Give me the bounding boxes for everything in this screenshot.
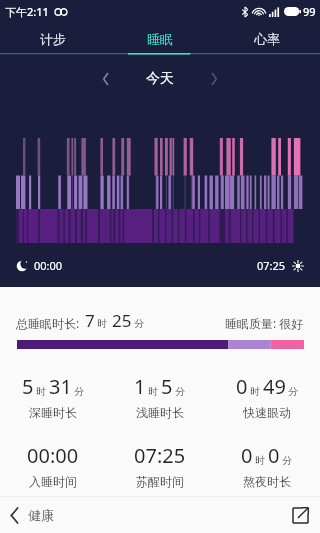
- staticText: 下午2:11: [5, 4, 49, 19]
- staticText: 苏醒时间: [136, 474, 184, 489]
- button[interactable]: Previous day: [92, 65, 120, 93]
- staticText: 5: [22, 373, 34, 400]
- staticText: 总睡眠时长:: [16, 315, 80, 331]
- staticText: 时: [97, 317, 107, 330]
- staticText: 1: [134, 373, 146, 400]
- staticText: 时: [148, 385, 158, 398]
- staticText: 今天: [146, 70, 174, 88]
- staticText: 分: [134, 317, 144, 330]
- staticText: 心率: [254, 31, 280, 47]
- button[interactable]: Share: [288, 503, 312, 527]
- staticText: 分: [74, 385, 84, 398]
- staticText: 分: [288, 385, 298, 398]
- button[interactable]: 计步: [0, 22, 106, 55]
- staticText: 分: [282, 454, 292, 467]
- staticText: 00:00: [27, 442, 79, 469]
- button[interactable]: 心率: [213, 22, 320, 55]
- staticText: 25: [112, 309, 132, 332]
- staticText: 快速眼动: [243, 405, 291, 420]
- staticText: 0: [236, 373, 248, 400]
- staticText: 计步: [40, 31, 66, 47]
- staticText: 99: [303, 4, 316, 19]
- staticText: 31: [49, 373, 72, 400]
- staticText: 00:00: [34, 258, 63, 273]
- staticText: 浅睡时长: [136, 405, 184, 420]
- staticText: 时: [250, 385, 260, 398]
- button[interactable]: 健康: [0, 507, 66, 523]
- button[interactable]: Next day: [200, 65, 228, 93]
- staticText: 7: [85, 309, 95, 332]
- staticText: 深睡时长: [29, 405, 77, 420]
- staticText: 07:25: [257, 258, 286, 273]
- staticText: 0: [241, 442, 253, 469]
- staticText: 时: [255, 454, 265, 467]
- staticText: 0: [268, 442, 280, 469]
- button[interactable]: 睡眠: [106, 22, 213, 55]
- staticText: 分: [175, 385, 185, 398]
- staticText: 49: [263, 373, 286, 400]
- staticText: 5: [161, 373, 173, 400]
- staticText: 睡眠: [147, 31, 173, 47]
- staticText: 健康: [28, 507, 54, 523]
- staticText: 时: [36, 385, 46, 398]
- staticText: 睡眠质量: 很好: [225, 315, 304, 331]
- staticText: 入睡时间: [29, 474, 77, 489]
- staticText: 熬夜时长: [243, 474, 291, 489]
- staticText: 07:25: [134, 442, 186, 469]
